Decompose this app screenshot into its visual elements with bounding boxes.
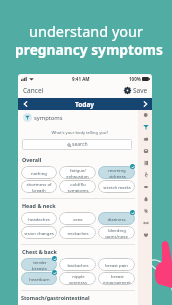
- button[interactable]: tender: [21, 258, 57, 271]
- staticText: nipple: [72, 273, 85, 279]
- button[interactable]: bleeding: [98, 226, 135, 239]
- staticText: tender: [33, 259, 47, 265]
- button[interactable]: cold/flu: [59, 180, 96, 193]
- staticText: dizziness: [107, 216, 126, 222]
- staticText: nothing: [31, 170, 47, 176]
- staticText: shortness of: [26, 181, 52, 187]
- button[interactable]: shortness of: [21, 180, 57, 193]
- button[interactable]: nothing: [21, 166, 57, 179]
- staticText: exhaustion: [66, 173, 89, 179]
- staticText: morning: [108, 167, 126, 173]
- button[interactable]: Next day: [138, 98, 152, 110]
- staticText: Today: [75, 100, 95, 109]
- staticText: symptoms: [34, 114, 63, 122]
- staticText: engorgement: [103, 279, 131, 285]
- staticText: Cancel: [23, 86, 44, 95]
- staticText: Chest & back: [22, 248, 57, 255]
- staticText: pregnancy symptoms: [3, 40, 172, 59]
- button[interactable]: Previous day: [18, 98, 32, 110]
- button[interactable]: fatigue/: [59, 166, 96, 179]
- staticText: search: [72, 141, 88, 148]
- button[interactable]: vision changes: [21, 226, 57, 239]
- staticText: gums/nose: [105, 233, 128, 239]
- button[interactable]: symptoms: [23, 111, 138, 124]
- staticText: 9:41 AM: [72, 76, 90, 82]
- staticText: 100%: [129, 76, 141, 82]
- button[interactable]: breast pain: [98, 258, 135, 271]
- staticText: Overall: [22, 156, 42, 163]
- staticText: neckaches: [67, 230, 89, 236]
- button[interactable]: Cancel: [22, 84, 45, 97]
- button[interactable]: stretch marks: [98, 180, 135, 193]
- staticText: Stomach/gastrointestinal: [21, 294, 90, 301]
- staticText: bleeding: [108, 227, 126, 233]
- button[interactable]: search: [22, 139, 132, 150]
- button[interactable]: Save: [123, 84, 149, 97]
- staticText: stretch marks: [103, 184, 131, 190]
- staticText: breast pain: [105, 262, 128, 268]
- button[interactable]: heartburn: [21, 272, 57, 285]
- button[interactable]: headaches: [21, 212, 57, 225]
- staticText: backaches: [67, 262, 89, 268]
- staticText: symptoms: [67, 187, 89, 193]
- button[interactable]: backaches: [59, 258, 96, 271]
- staticText: breasts: [32, 265, 47, 271]
- button[interactable]: acne: [59, 212, 96, 225]
- staticText: breath: [32, 187, 46, 193]
- staticText: heartburn: [29, 276, 50, 282]
- button[interactable]: breast: [98, 272, 135, 285]
- staticText: vision changes: [24, 230, 54, 236]
- staticText: sickness: [109, 173, 126, 179]
- staticText: fatigue/: [70, 167, 86, 173]
- staticText: soreness: [69, 279, 87, 285]
- button[interactable]: neckaches: [59, 226, 96, 239]
- button[interactable]: morning: [98, 166, 135, 179]
- staticText: Save: [133, 86, 148, 95]
- button[interactable]: nipple: [59, 272, 96, 285]
- staticText: What's your body telling you?: [18, 130, 108, 136]
- staticText: breast: [111, 273, 124, 279]
- staticText: acne: [73, 216, 83, 222]
- staticText: Head & neck: [22, 202, 56, 209]
- staticText: understand your: [0, 21, 172, 41]
- staticText: cold/flu: [70, 181, 86, 187]
- staticText: headaches: [28, 216, 50, 222]
- button[interactable]: dizziness: [98, 212, 135, 225]
